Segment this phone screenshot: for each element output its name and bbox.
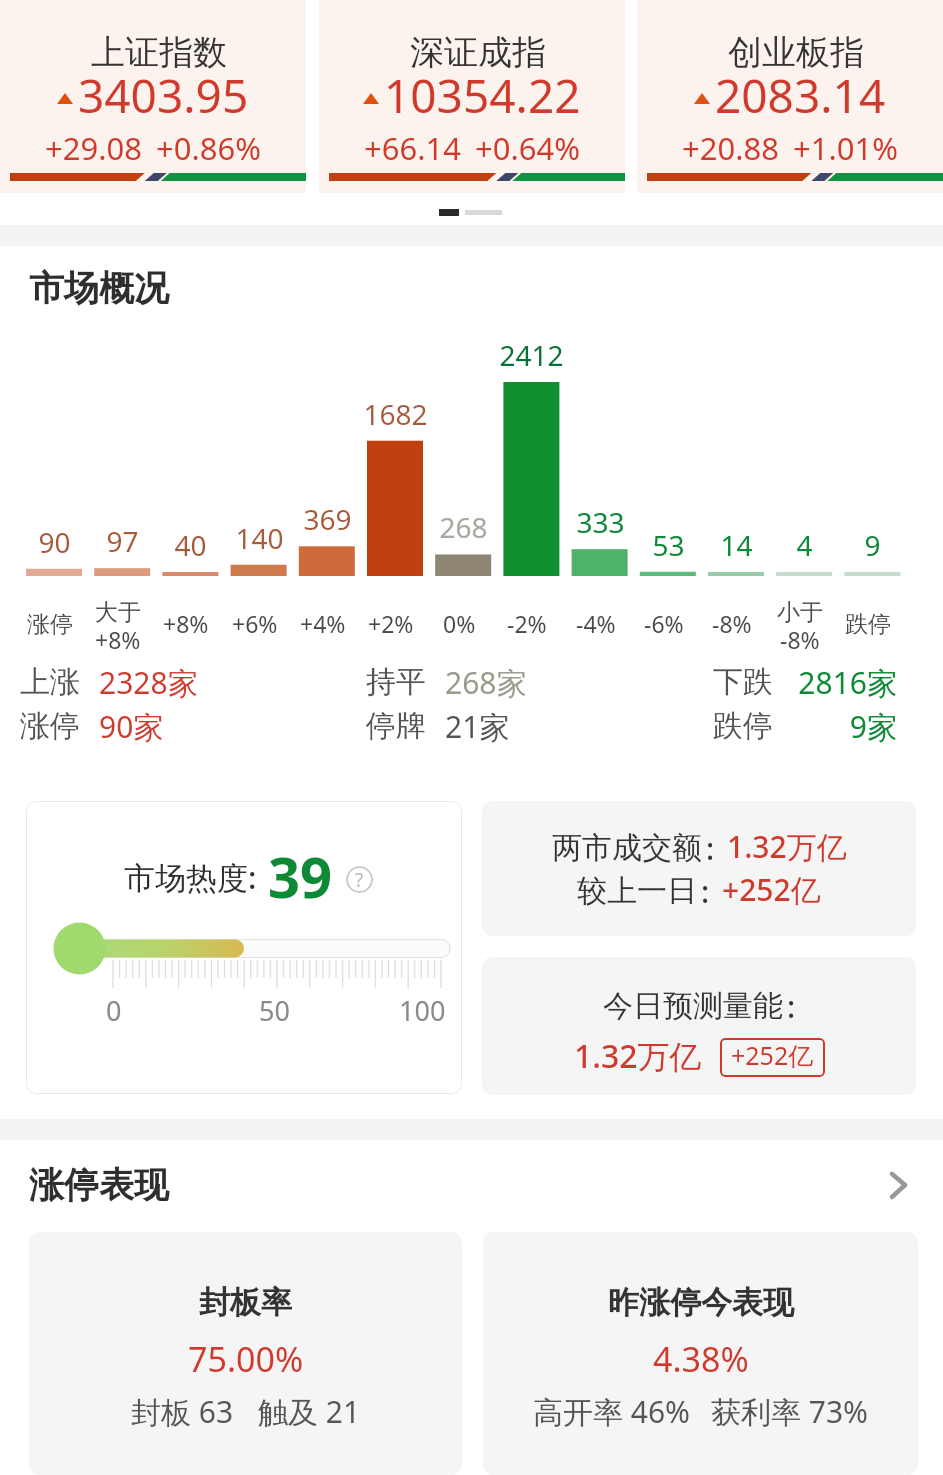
staticText: 跌停 <box>713 710 773 745</box>
staticText: : <box>701 875 710 910</box>
staticText: 获利率 73% <box>711 1395 869 1432</box>
staticText: +8% <box>95 628 141 655</box>
staticText: -2% <box>507 612 547 639</box>
staticText: 0 <box>106 996 122 1028</box>
button[interactable]: 上证指数 <box>0 0 306 193</box>
staticText: 369 <box>303 504 352 537</box>
staticText: 市场概况 <box>29 269 169 310</box>
staticText: 97 <box>106 526 139 559</box>
staticText: +1.01% <box>793 131 898 168</box>
staticText: 9 <box>864 530 881 563</box>
staticText: 创业板指 <box>728 34 864 74</box>
staticText: 0% <box>443 612 476 639</box>
staticText: 53 <box>652 530 685 563</box>
staticText: 涨停表现 <box>29 1166 169 1207</box>
staticText: 持平 <box>366 666 426 701</box>
staticText: 4 <box>796 530 813 563</box>
staticText: +0.64% <box>475 131 580 168</box>
staticText: : <box>706 832 715 867</box>
staticText: 9家 <box>713 710 897 747</box>
staticText: 39 <box>268 846 333 912</box>
staticText: -8% <box>780 628 820 655</box>
staticText: 下跌 <box>713 666 773 701</box>
button[interactable]: 创业板指 <box>637 0 943 193</box>
other: More <box>884 1168 914 1198</box>
staticText: +0.86% <box>156 131 261 168</box>
staticText: 今日预测量能 <box>603 990 783 1025</box>
staticText: 较上一日 <box>577 875 697 910</box>
staticText: 2412 <box>499 340 564 373</box>
staticText: +6% <box>232 612 278 639</box>
staticText: +2% <box>368 612 414 639</box>
staticText: 小于 <box>777 600 823 627</box>
staticText: 10354.22 <box>384 70 581 124</box>
button[interactable]: 昨涨停今表现 <box>483 1232 918 1475</box>
staticText: 40 <box>174 530 207 563</box>
staticText: 90家 <box>99 710 299 747</box>
staticText: 268家 <box>445 666 645 703</box>
staticText: +29.08 <box>45 131 142 168</box>
staticText: 跌停 <box>845 612 891 639</box>
staticText: 14 <box>720 530 753 563</box>
staticText: 268 <box>439 512 488 545</box>
staticText: 高开率 46% <box>533 1395 691 1432</box>
staticText: 深证成指 <box>410 34 546 74</box>
staticText: 停牌 <box>366 710 426 745</box>
staticText: 两市成交额 <box>552 832 702 867</box>
staticText: 封板 63 <box>131 1395 234 1432</box>
staticText: 21家 <box>445 710 645 747</box>
staticText: 333 <box>576 507 625 540</box>
staticText: 上证指数 <box>91 34 227 74</box>
staticText: : <box>787 990 796 1025</box>
staticText: 1682 <box>363 399 428 432</box>
staticText: 2816家 <box>713 666 897 703</box>
staticText: 涨停 <box>20 710 80 745</box>
staticText: 4.38% <box>653 1341 749 1381</box>
staticText: +252亿 <box>731 1042 814 1073</box>
staticText: 140 <box>235 523 284 556</box>
staticText: +66.14 <box>364 131 461 168</box>
button[interactable]: 今日预测量能 <box>482 957 916 1095</box>
staticText: 封板率 <box>199 1286 292 1323</box>
staticText: 2083.14 <box>715 70 886 124</box>
staticText: 75.00% <box>188 1341 304 1381</box>
staticText: 100 <box>399 996 446 1028</box>
button[interactable]: 封板率 <box>29 1232 462 1475</box>
button[interactable]: 深证成指 <box>319 0 625 193</box>
staticText: 1.32万亿 <box>574 1038 702 1077</box>
button[interactable]: 涨停表现 <box>0 1150 943 1210</box>
staticText: 触及 21 <box>258 1395 361 1432</box>
staticText: 涨停 <box>27 612 73 639</box>
staticText: 上涨 <box>20 666 80 701</box>
staticText: 50 <box>259 996 290 1028</box>
staticText: 90 <box>38 527 71 560</box>
button[interactable]: 两市成交额 <box>482 801 916 936</box>
staticText: +20.88 <box>682 131 779 168</box>
staticText: 市场热度: <box>124 860 257 898</box>
staticText: -6% <box>644 612 684 639</box>
staticText: -4% <box>576 612 616 639</box>
staticText: 2328家 <box>99 666 299 703</box>
staticText: 1.32万亿 <box>727 830 847 867</box>
staticText: +4% <box>300 612 346 639</box>
staticText: 3403.95 <box>78 70 249 124</box>
staticText: +252亿 <box>722 873 821 910</box>
staticText: 昨涨停今表现 <box>608 1286 794 1323</box>
button[interactable]: 市场热度: <box>26 801 462 1094</box>
staticText: 大于 <box>95 600 141 627</box>
staticText: -8% <box>712 612 752 639</box>
staticText: ? <box>355 869 364 891</box>
staticText: +8% <box>163 612 209 639</box>
